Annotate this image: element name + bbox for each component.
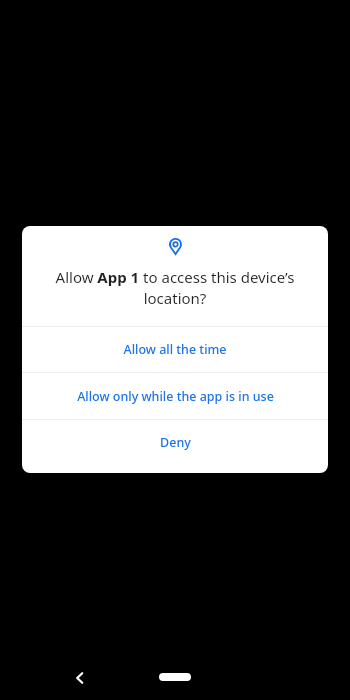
button[interactable]: Deny bbox=[22, 420, 328, 465]
staticText: Allow only while the app is in use bbox=[77, 388, 274, 405]
staticText: Allow all the time bbox=[123, 341, 227, 358]
button[interactable]: Back bbox=[62, 660, 98, 696]
staticText: Deny bbox=[160, 434, 191, 451]
button[interactable]: Home bbox=[158, 659, 192, 695]
button[interactable]: Allow only while the app is in use bbox=[22, 373, 328, 419]
staticText: Allow App 1 to access this device’s loca… bbox=[40, 267, 310, 309]
button[interactable]: Allow all the time bbox=[22, 327, 328, 372]
